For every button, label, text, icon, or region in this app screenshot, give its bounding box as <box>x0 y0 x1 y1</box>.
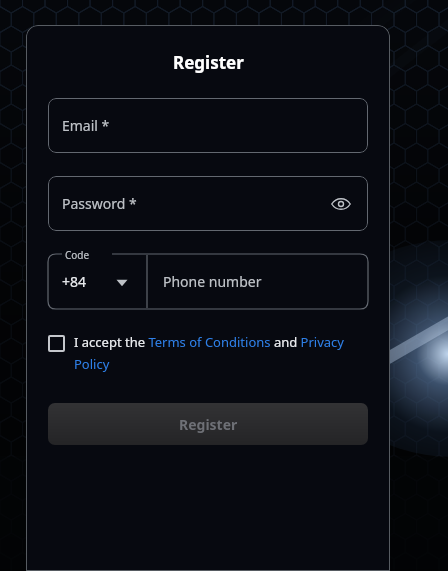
staticText: Phone number <box>163 272 262 291</box>
staticText: Password * <box>62 194 328 213</box>
button[interactable]: +84 <box>48 254 147 309</box>
button[interactable]: Show password <box>328 191 354 217</box>
button[interactable]: Email * <box>48 98 368 153</box>
button[interactable]: Register <box>48 403 368 445</box>
button[interactable]: Accept terms checkbox <box>48 333 368 373</box>
button[interactable]: Phone number <box>147 254 368 309</box>
staticText: +84 <box>62 272 87 291</box>
staticText: Email * <box>62 116 354 135</box>
button[interactable]: Password * <box>48 176 368 231</box>
staticText: Code <box>65 248 90 262</box>
other: Accept terms checkbox <box>48 335 65 352</box>
staticText: I accept the Terms of Conditions and Pri… <box>74 333 368 373</box>
staticText: Register <box>173 51 244 74</box>
staticText: Register <box>179 415 238 434</box>
